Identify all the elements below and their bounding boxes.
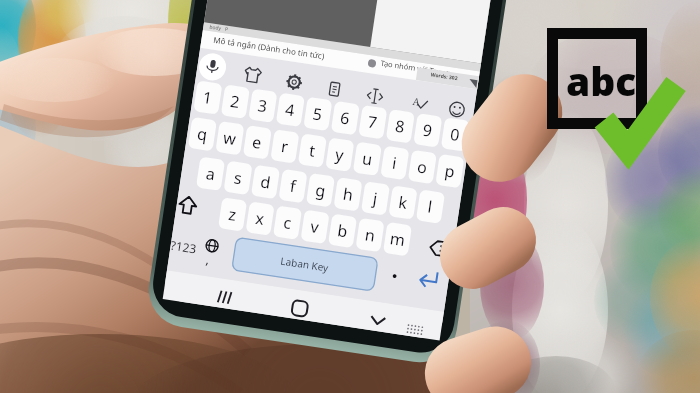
button[interactable]: Hand holding a phone showing the Laban K… — [0, 0, 700, 393]
